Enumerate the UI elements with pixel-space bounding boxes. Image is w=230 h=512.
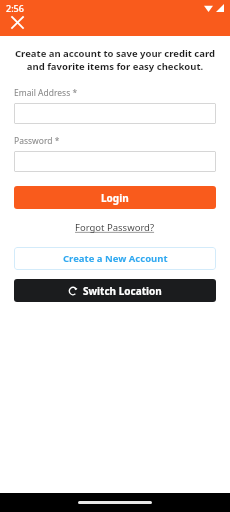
button[interactable] bbox=[14, 103, 216, 124]
button[interactable]: Close bbox=[6, 11, 28, 33]
staticText: Login bbox=[101, 191, 129, 205]
button[interactable]: Login bbox=[14, 186, 216, 209]
button[interactable]: Switch Location bbox=[14, 279, 216, 302]
staticText: Forgot Password? bbox=[75, 221, 155, 234]
button[interactable] bbox=[14, 151, 216, 172]
staticText: Email Address * bbox=[14, 87, 78, 99]
staticText: Switch Location bbox=[83, 284, 162, 298]
staticText: 2:56 bbox=[6, 2, 24, 14]
button[interactable]: Create a New Account bbox=[14, 247, 216, 270]
staticText: Password * bbox=[14, 135, 60, 147]
staticText: Create an account to save your credit ca… bbox=[14, 47, 216, 73]
staticText: Create a New Account bbox=[63, 252, 168, 265]
button[interactable]: Forgot Password? bbox=[71, 219, 159, 236]
